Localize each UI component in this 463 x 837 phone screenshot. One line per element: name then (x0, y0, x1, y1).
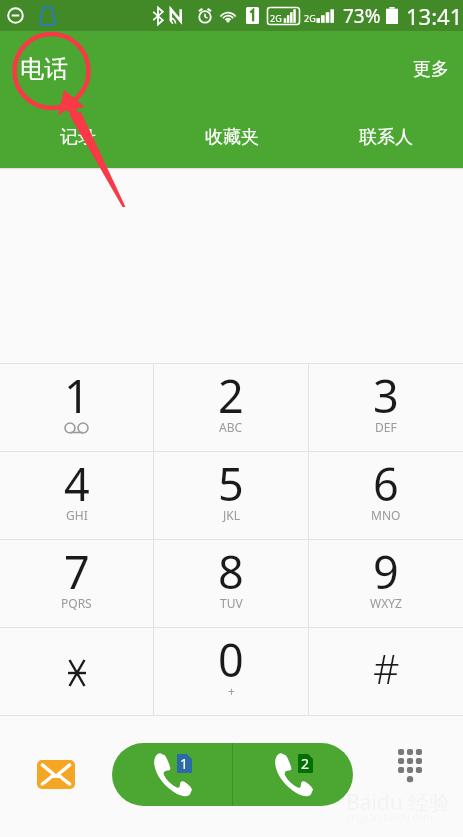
staticText: 7 (64, 541, 90, 602)
staticText: 5 (218, 453, 244, 514)
button[interactable]: 4 (0, 452, 153, 539)
staticText: 3 (373, 365, 399, 426)
button[interactable]: 收藏夹 (155, 118, 309, 168)
button[interactable]: 5 (154, 452, 308, 539)
button[interactable]: 1 (0, 364, 153, 451)
staticText: 联系人 (359, 126, 413, 149)
button[interactable]: 0 (154, 628, 308, 715)
staticText: + (228, 683, 235, 699)
staticText: MNO (371, 507, 401, 523)
staticText: 73% (343, 3, 381, 29)
staticText: Baidu 经验 (346, 788, 451, 817)
staticText: PQRS (61, 595, 92, 611)
staticText: 2G (304, 12, 316, 24)
button[interactable]: 6 (309, 452, 463, 539)
staticText: 9 (373, 541, 399, 602)
staticText: DEF (375, 419, 397, 435)
button[interactable]: 8 (154, 540, 308, 627)
staticText: 0 (218, 629, 244, 690)
staticText: 4 (64, 453, 90, 514)
button[interactable]: 7 (0, 540, 153, 627)
staticText: 记录 (60, 126, 96, 149)
button[interactable]: 电话 (0, 31, 68, 84)
button[interactable] (0, 628, 153, 715)
button[interactable]: 记录 (0, 118, 155, 168)
button[interactable]: 3 (309, 364, 463, 451)
button[interactable]: 9 (309, 540, 463, 627)
staticText: 更多 (413, 58, 449, 81)
staticText: 13:41 (406, 1, 463, 31)
button[interactable]: 更多 (413, 31, 463, 81)
button[interactable]: # (309, 628, 463, 715)
button[interactable]: Keypad (380, 733, 440, 795)
button[interactable]: Call with SIM 2 (233, 743, 353, 806)
button[interactable]: Message (18, 743, 94, 805)
staticText: 收藏夹 (205, 126, 259, 149)
staticText: 8 (218, 541, 244, 602)
staticText: # (373, 640, 400, 696)
staticText: GHI (66, 507, 88, 523)
staticText: TUV (220, 595, 243, 611)
staticText: JKL (223, 507, 240, 523)
staticText: 2 (301, 754, 310, 773)
staticText: WXYZ (370, 595, 402, 611)
staticText: 电话 (20, 54, 68, 84)
button[interactable]: Call with SIM 1 (112, 743, 232, 806)
staticText: 2G (270, 12, 282, 24)
staticText: 2 (218, 365, 244, 426)
button[interactable]: 联系人 (309, 118, 463, 168)
button[interactable]: 2 (154, 364, 308, 451)
staticText: 6 (373, 453, 399, 514)
staticText: 1 (64, 365, 90, 426)
staticText: 1 (180, 754, 189, 773)
staticText: ABC (219, 419, 243, 435)
